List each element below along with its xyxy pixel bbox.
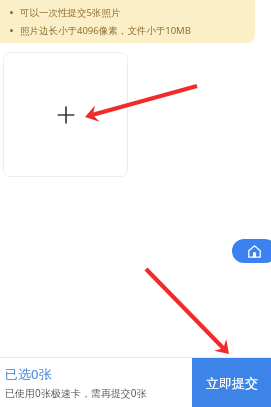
staticText: 可以一次性提交5张照片 bbox=[20, 6, 121, 19]
staticText: 已使用0张极速卡，需再提交0张 bbox=[5, 386, 147, 400]
button[interactable]: Add photo bbox=[3, 52, 128, 177]
staticText: 照片边长小于4096像素，文件小于10MB bbox=[20, 24, 191, 37]
other: Add photo bbox=[56, 105, 76, 125]
staticText: 已选0张 bbox=[5, 365, 52, 383]
staticText: 立即提交 bbox=[206, 375, 258, 391]
button[interactable]: Home bbox=[232, 239, 271, 263]
button[interactable]: 立即提交 bbox=[192, 358, 271, 407]
